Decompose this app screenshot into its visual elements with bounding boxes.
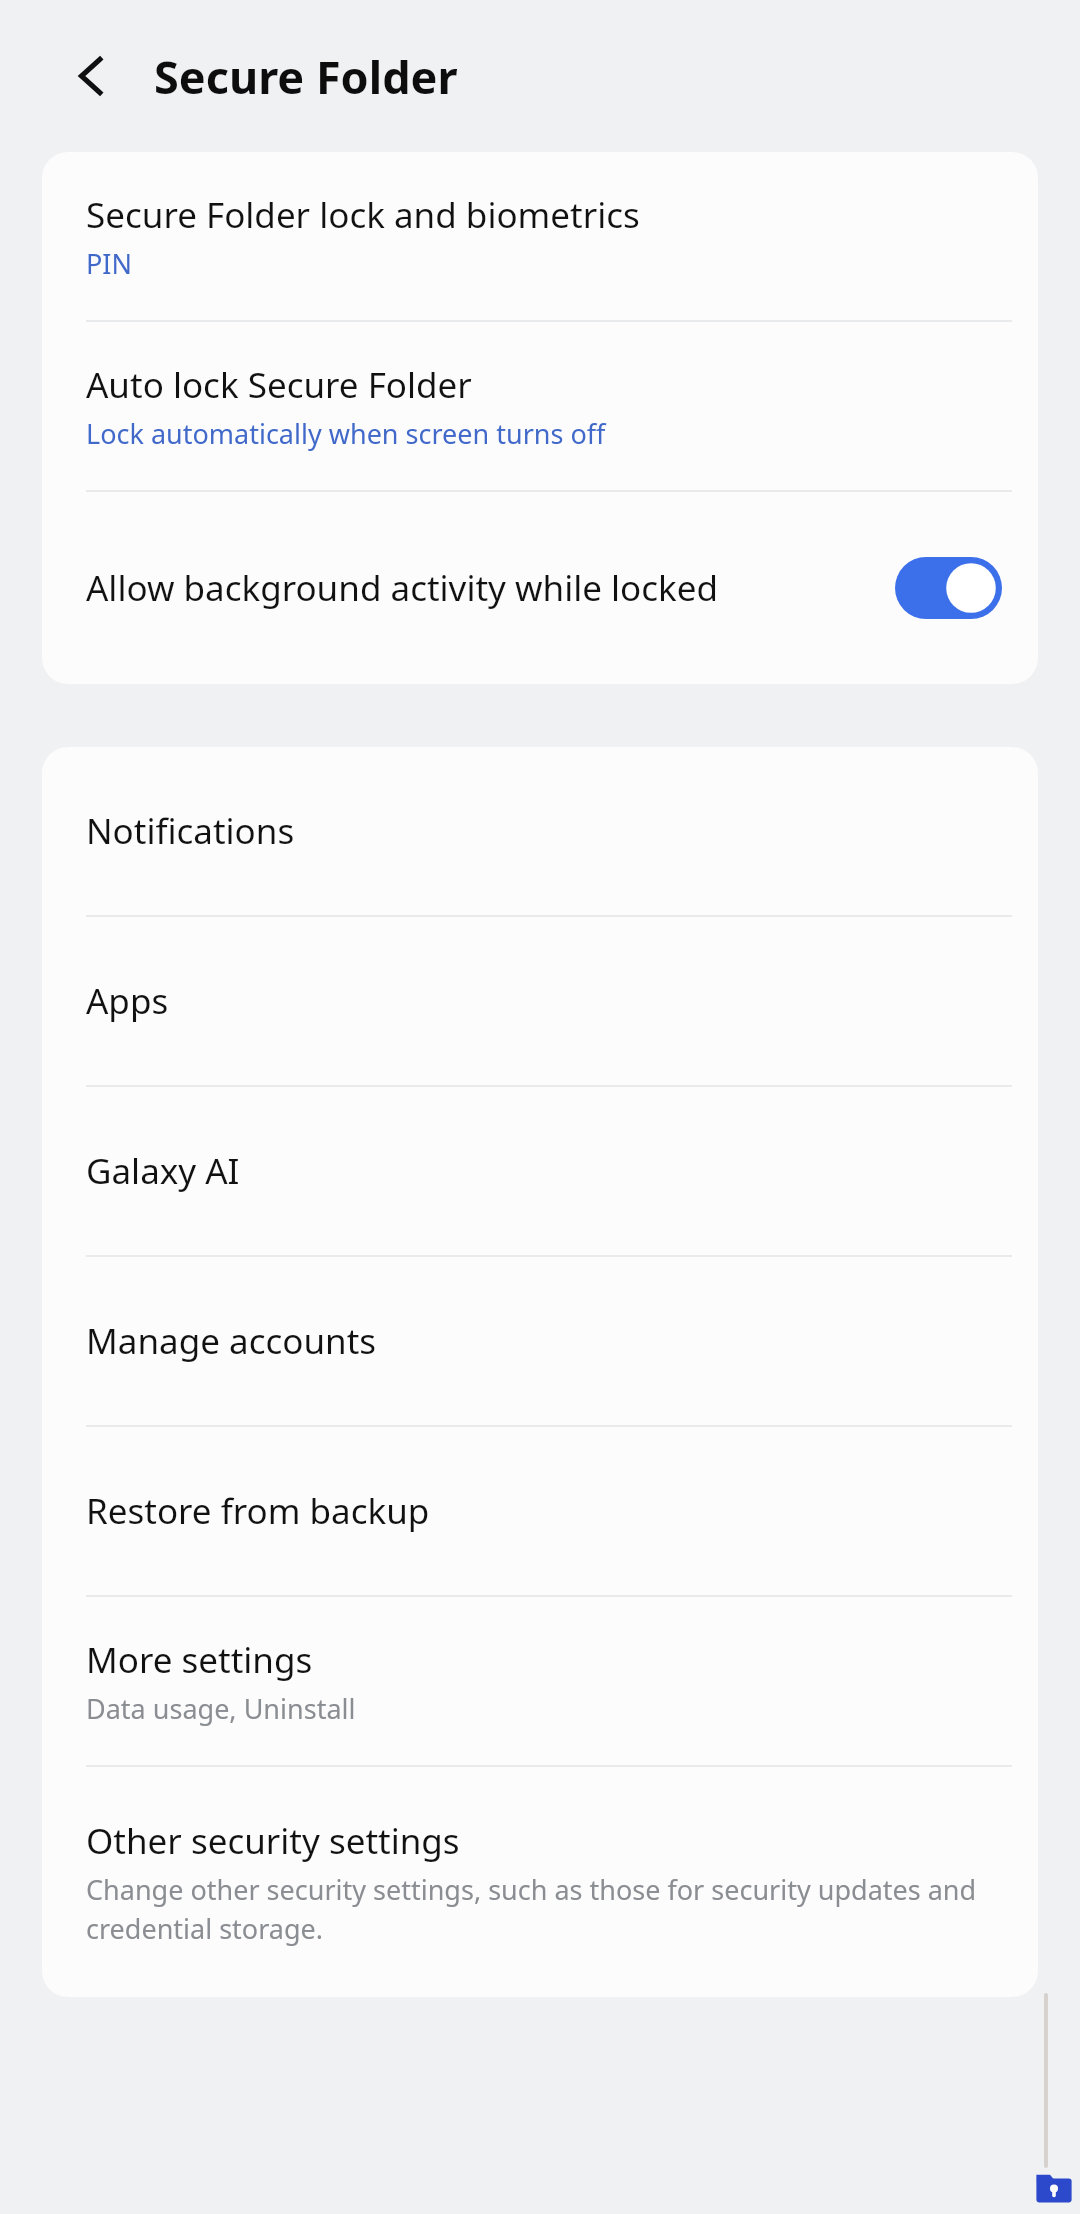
staticText: Restore from backup <box>86 1487 430 1535</box>
button[interactable]: Allow background activity while locked <box>895 557 1002 619</box>
button[interactable]: Secure Folder lock and biometrics <box>42 152 1038 320</box>
button[interactable]: Back <box>44 28 140 124</box>
button[interactable]: Restore from backup <box>42 1427 1038 1595</box>
button[interactable]: Other security settings <box>42 1767 1038 1997</box>
staticText: More settings <box>86 1636 313 1684</box>
staticText: PIN <box>86 245 133 282</box>
button[interactable]: Secure Folder <box>1034 2166 1074 2206</box>
button[interactable]: Apps <box>42 917 1038 1085</box>
staticText: Secure Folder lock and biometrics <box>86 191 640 239</box>
staticText: Data usage, Uninstall <box>86 1690 356 1727</box>
button[interactable]: Auto lock Secure Folder <box>42 322 1038 490</box>
staticText: Other security settings <box>86 1817 460 1865</box>
button[interactable]: More settings <box>42 1597 1038 1765</box>
staticText: Allow background activity while locked <box>86 564 718 612</box>
staticText: Auto lock Secure Folder <box>86 361 472 409</box>
button[interactable]: Allow background activity while locked <box>42 492 1038 684</box>
staticText: Galaxy AI <box>86 1147 240 1195</box>
staticText: Manage accounts <box>86 1317 377 1365</box>
button[interactable]: Manage accounts <box>42 1257 1038 1425</box>
staticText: Change other security settings, such as … <box>86 1871 994 1947</box>
staticText: Lock automatically when screen turns off <box>86 415 606 452</box>
button[interactable]: Notifications <box>42 747 1038 915</box>
staticText: Notifications <box>86 807 295 855</box>
button[interactable]: Galaxy AI <box>42 1087 1038 1255</box>
staticText: Secure Folder <box>154 46 458 107</box>
staticText: Apps <box>86 977 169 1025</box>
